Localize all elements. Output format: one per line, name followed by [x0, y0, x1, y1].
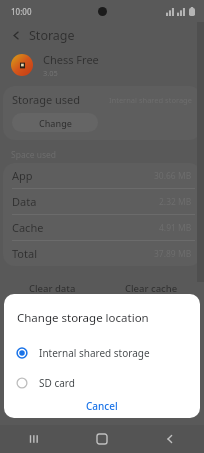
staticText: 4.91 MB [159, 222, 192, 234]
staticText: 10:00 [11, 6, 32, 17]
staticText: Total [12, 246, 37, 261]
button[interactable]: Home [68, 425, 136, 453]
button[interactable]: SD card [4, 372, 200, 394]
staticText: 30.66 MB [154, 170, 192, 182]
button[interactable]: Cache [3, 215, 201, 241]
staticText: 37.89 MB [154, 248, 192, 260]
button[interactable]: Data [3, 189, 201, 215]
staticText: Space used [11, 149, 57, 161]
button[interactable]: Change [12, 113, 98, 132]
staticText: Cache [12, 220, 44, 235]
staticText: 3.05 [43, 68, 58, 78]
button[interactable]: Total [3, 241, 201, 266]
staticText: Cancel [86, 399, 118, 413]
button[interactable]: Clear data [3, 276, 102, 300]
staticText: App [12, 168, 33, 183]
staticText: Storage used [12, 92, 81, 107]
staticText: SD card [39, 376, 75, 390]
staticText: Clear cache [125, 282, 178, 295]
button[interactable]: Internal shared storage [4, 342, 200, 364]
staticText: Chess Free [43, 52, 99, 67]
staticText: 2.32 MB [159, 196, 192, 208]
staticText: Change [39, 117, 72, 129]
staticText: Change storage location [17, 310, 149, 326]
button[interactable]: Cancel [76, 395, 128, 417]
staticText: Clear data [29, 282, 76, 295]
button[interactable]: Recent apps [0, 425, 68, 453]
button[interactable]: App [3, 163, 201, 189]
button[interactable]: Back [7, 26, 25, 44]
button[interactable]: Back [136, 425, 204, 453]
button[interactable]: Chess Free [0, 48, 204, 82]
staticText: Storage [29, 27, 75, 44]
staticText: Data [12, 194, 37, 209]
staticText: Internal shared storage [109, 95, 192, 105]
button[interactable]: Clear cache [102, 276, 201, 300]
staticText: Internal shared storage [39, 346, 150, 360]
